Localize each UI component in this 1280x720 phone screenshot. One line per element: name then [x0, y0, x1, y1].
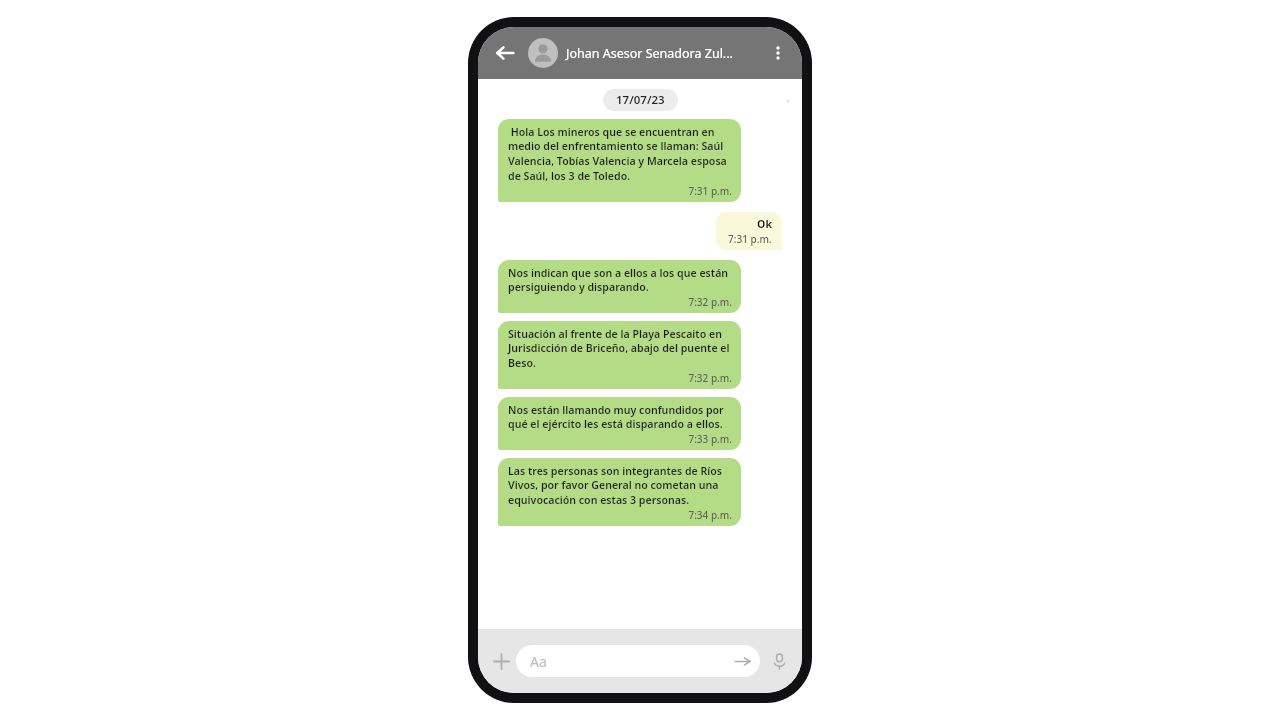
- button[interactable]: More options: [762, 36, 794, 70]
- staticText: Ok: [757, 217, 772, 231]
- staticText: Aa: [530, 652, 547, 671]
- button[interactable]: Contact avatar: [528, 38, 558, 68]
- staticText: 7:31 p.m.: [508, 184, 732, 198]
- staticText: Hola Los mineros que se encuentran en me…: [508, 125, 732, 183]
- staticText: 7:33 p.m.: [508, 432, 732, 446]
- staticText: Situación al frente de la Playa Pescaito…: [508, 327, 732, 370]
- staticText: Nos indican que son a ellos a los que es…: [508, 266, 732, 294]
- button[interactable]: 17/07/23: [603, 89, 678, 111]
- button[interactable]: Nos están llamando muy confundidos por q…: [498, 397, 741, 450]
- staticText: Las tres personas son integrantes de Río…: [508, 464, 732, 507]
- staticText: Johan Asesor Senadora Zul...: [566, 45, 762, 62]
- button[interactable]: Aa: [516, 645, 760, 677]
- button[interactable]: Add attachment: [486, 646, 516, 676]
- button[interactable]: Ok: [716, 212, 782, 250]
- staticText: 7:34 p.m.: [508, 508, 732, 522]
- button[interactable]: Hola Los mineros que se encuentran en me…: [498, 119, 741, 202]
- button[interactable]: Voice message: [764, 646, 794, 676]
- button[interactable]: Nos indican que son a ellos a los que es…: [498, 260, 741, 313]
- staticText: 7:31 p.m.: [728, 232, 772, 246]
- staticText: 7:32 p.m.: [508, 371, 732, 385]
- button[interactable]: Back: [488, 36, 522, 70]
- button[interactable]: Las tres personas son integrantes de Río…: [498, 458, 741, 526]
- staticText: Nos están llamando muy confundidos por q…: [508, 403, 732, 431]
- button[interactable]: Situación al frente de la Playa Pescaito…: [498, 321, 741, 389]
- staticText: 17/07/23: [616, 92, 665, 108]
- staticText: 7:32 p.m.: [508, 295, 732, 309]
